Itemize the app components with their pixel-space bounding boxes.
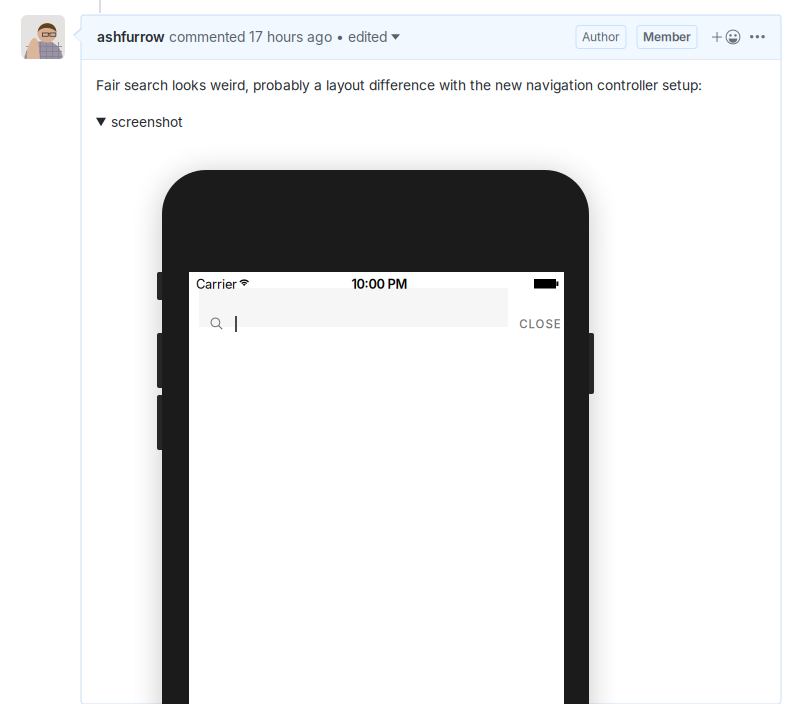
staticText: 10:00 PM <box>351 276 407 292</box>
button[interactable]: Member <box>637 25 697 48</box>
staticText: Fair search looks weird, probably a layo… <box>96 77 702 94</box>
button[interactable]: Show options <box>745 30 770 44</box>
staticText: Author <box>582 30 620 44</box>
staticText: Carrier <box>196 276 237 292</box>
staticText: CLOSE <box>519 317 561 331</box>
staticText: ashfurrow <box>97 29 165 45</box>
button[interactable]: Author <box>576 25 626 48</box>
button[interactable]: screenshot <box>96 114 182 130</box>
staticText: screenshot <box>111 114 182 130</box>
staticText: commented 17 hours ago • edited <box>165 29 391 45</box>
button[interactable]: Add reaction <box>708 25 745 49</box>
staticText: Member <box>643 30 691 44</box>
button[interactable]: CLOSE <box>514 313 566 335</box>
